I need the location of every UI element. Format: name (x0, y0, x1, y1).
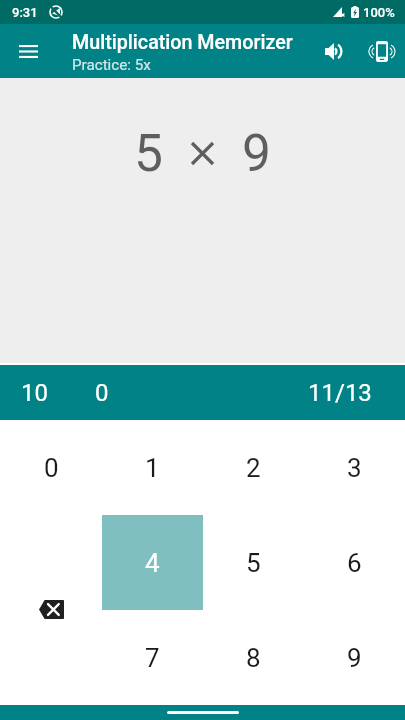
staticText: 7 (145, 643, 160, 673)
button[interactable]: Toggle sound (310, 24, 358, 78)
staticText: 2 (246, 453, 261, 483)
button[interactable]: 2 (203, 420, 304, 515)
staticText: Multiplication Memorizer (72, 31, 293, 54)
button[interactable]: Toggle vibration (358, 24, 405, 78)
staticText: 3 (347, 453, 362, 483)
staticText: 4 (145, 548, 160, 578)
staticText: 10 (21, 379, 48, 407)
button[interactable] (0, 610, 102, 705)
staticText: 6 (347, 548, 362, 578)
staticText: 11/13 (308, 379, 372, 407)
button[interactable]: 0 (0, 420, 102, 515)
button[interactable]: Backspace (0, 515, 102, 610)
button[interactable]: 1 (102, 420, 203, 515)
staticText: 9:31 (12, 5, 38, 20)
staticText: 8 (246, 643, 261, 673)
button[interactable]: Open navigation menu (0, 24, 56, 78)
staticText: Practice: 5x (72, 56, 151, 74)
button[interactable]: 4 (102, 515, 203, 610)
staticText: 0 (95, 379, 109, 407)
staticText: 1 (145, 453, 160, 483)
button[interactable]: 6 (304, 515, 405, 610)
button[interactable]: 7 (102, 610, 203, 705)
button[interactable]: 3 (304, 420, 405, 515)
staticText: 5 (246, 548, 261, 578)
button[interactable]: 9 (304, 610, 405, 705)
staticText: 0 (44, 453, 59, 483)
button[interactable]: 5 (203, 515, 304, 610)
staticText: 5 (134, 123, 163, 183)
button[interactable]: Backspace (39, 600, 64, 619)
button[interactable]: 8 (203, 610, 304, 705)
staticText: 9 (347, 643, 362, 673)
staticText: 9 (242, 123, 271, 183)
staticText: 100% (363, 5, 395, 20)
